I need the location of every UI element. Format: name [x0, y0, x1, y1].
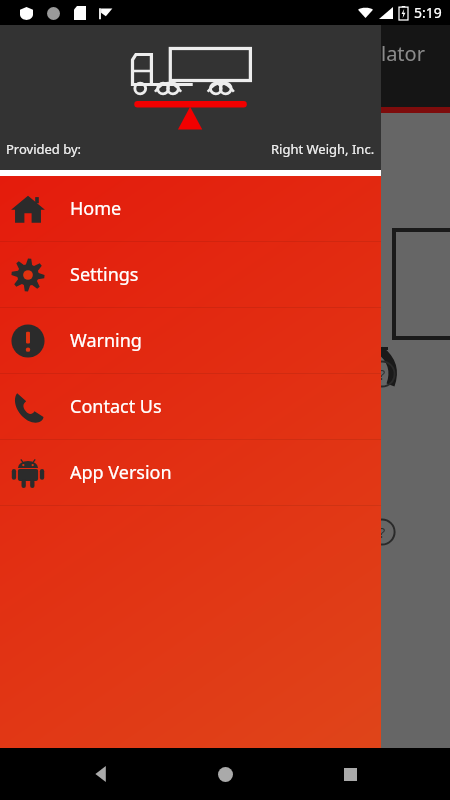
button[interactable]: Back	[77, 750, 125, 798]
staticText: Home	[70, 196, 122, 221]
button[interactable]: Home	[0, 176, 381, 241]
staticText: App Version	[70, 460, 172, 485]
staticText: Calculator	[330, 40, 425, 67]
staticText: Contact Us	[70, 394, 162, 419]
staticText: Settings	[70, 262, 139, 287]
button[interactable]: Warning	[0, 308, 381, 373]
staticText: Provided by:	[6, 140, 82, 158]
button[interactable]: Recent apps	[326, 750, 374, 798]
button[interactable]: Settings	[0, 242, 381, 307]
staticText: ?	[368, 522, 396, 542]
button[interactable]: App Version	[0, 440, 381, 505]
staticText: 5:19	[414, 3, 442, 22]
staticText: Warning	[70, 328, 142, 353]
staticText: ?	[368, 364, 396, 384]
button[interactable]: Home	[201, 750, 249, 798]
button[interactable]: Contact Us	[0, 374, 381, 439]
staticText: Right Weigh, Inc.	[271, 140, 375, 158]
